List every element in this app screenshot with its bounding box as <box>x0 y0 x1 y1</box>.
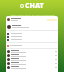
button[interactable] <box>6 43 58 48</box>
button[interactable] <box>6 49 58 53</box>
button[interactable] <box>6 65 58 69</box>
button[interactable] <box>6 16 58 23</box>
staticText: lorem ipsum dolor sit amet consectetur <box>10 13 55 16</box>
button[interactable] <box>6 23 58 30</box>
button[interactable] <box>6 61 58 65</box>
button[interactable] <box>6 32 58 35</box>
button[interactable] <box>6 53 58 57</box>
button[interactable] <box>6 35 58 38</box>
button[interactable] <box>6 38 58 41</box>
staticText: CHAT <box>25 1 44 11</box>
button[interactable] <box>6 57 58 61</box>
